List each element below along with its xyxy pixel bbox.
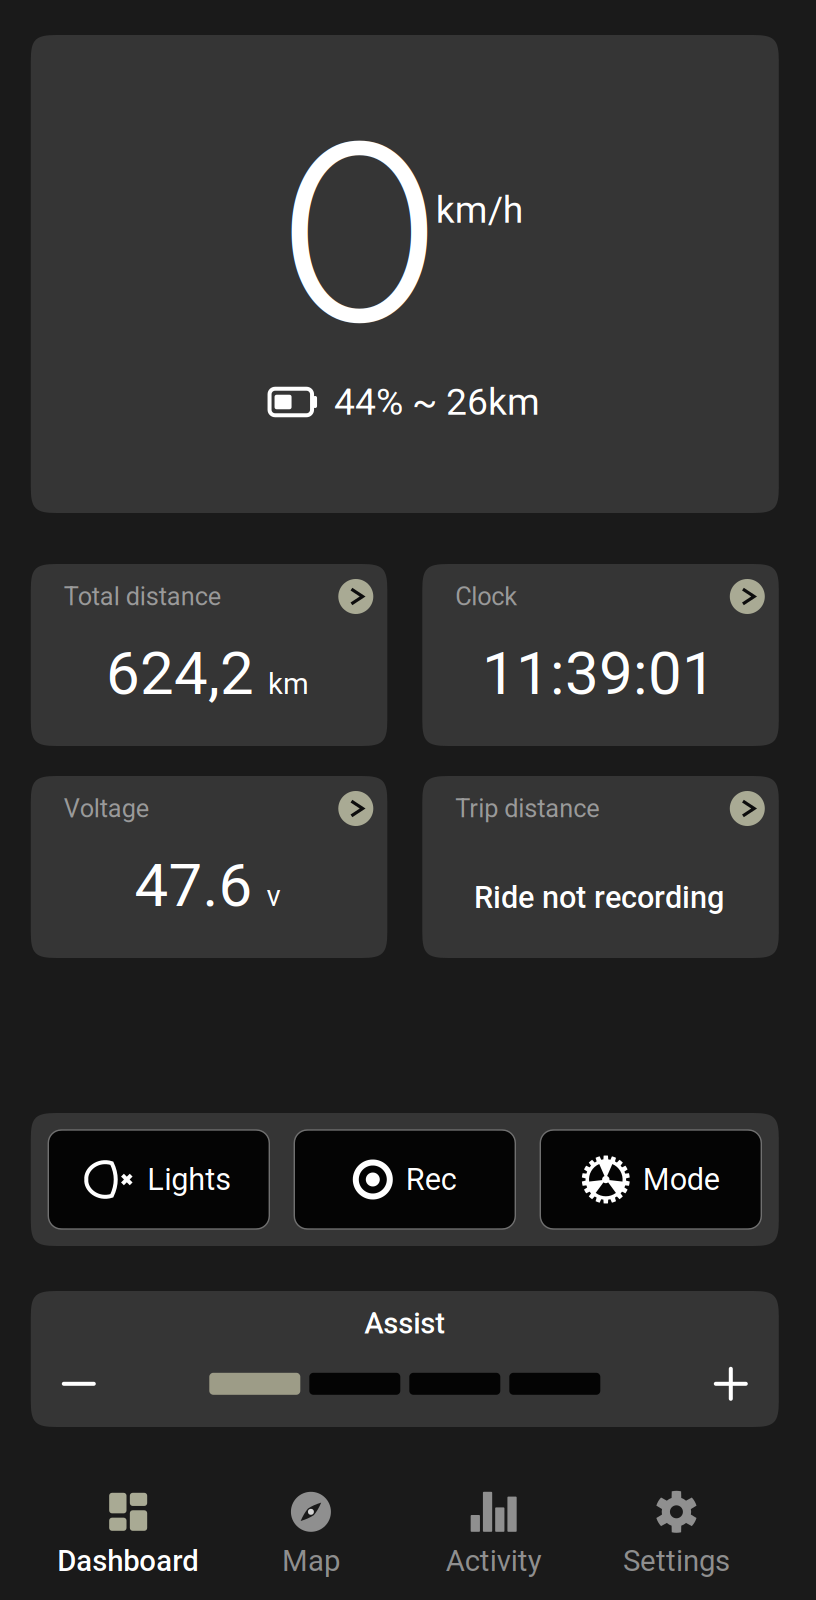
button[interactable]: Rec — [294, 1130, 515, 1229]
button[interactable]: Settings — [585, 1492, 768, 1578]
staticText: Clock — [455, 582, 517, 611]
staticText: v — [253, 879, 281, 913]
staticText: km/h — [436, 188, 524, 232]
staticText: 624,2 — [106, 638, 254, 709]
staticText: km — [254, 667, 309, 701]
staticText: Rec — [406, 1161, 457, 1197]
staticText: Assist — [364, 1306, 445, 1341]
button[interactable]: Activity — [402, 1492, 585, 1578]
button[interactable]: Dashboard — [37, 1492, 220, 1578]
staticText: Trip distance — [455, 794, 599, 823]
staticText: Voltage — [64, 794, 149, 823]
staticText: 44% ~ 26km — [334, 380, 540, 424]
button[interactable]: Voltage — [31, 776, 387, 958]
button[interactable]: Total distance — [31, 564, 387, 746]
staticText: Total distance — [64, 582, 221, 611]
button[interactable]: Clock — [422, 564, 779, 746]
staticText: Lights — [147, 1161, 231, 1197]
staticText: Dashboard — [57, 1544, 199, 1578]
button[interactable]: Map — [220, 1492, 402, 1578]
button[interactable]: Lights — [48, 1130, 269, 1229]
button[interactable]: Decrease assist — [31, 1356, 127, 1412]
staticText: Mode — [643, 1161, 720, 1197]
staticText: 0 — [279, 81, 440, 383]
staticText: Activity — [446, 1544, 542, 1578]
button[interactable]: Mode — [540, 1130, 761, 1229]
button[interactable]: Trip distance — [422, 776, 779, 958]
staticText: 11:39:01 — [482, 638, 716, 709]
staticText: Settings — [623, 1544, 730, 1578]
button[interactable]: Increase assist — [683, 1356, 779, 1412]
staticText: Map — [282, 1544, 340, 1578]
staticText: Ride not recording — [474, 879, 724, 915]
staticText: 47.6 — [135, 850, 253, 921]
